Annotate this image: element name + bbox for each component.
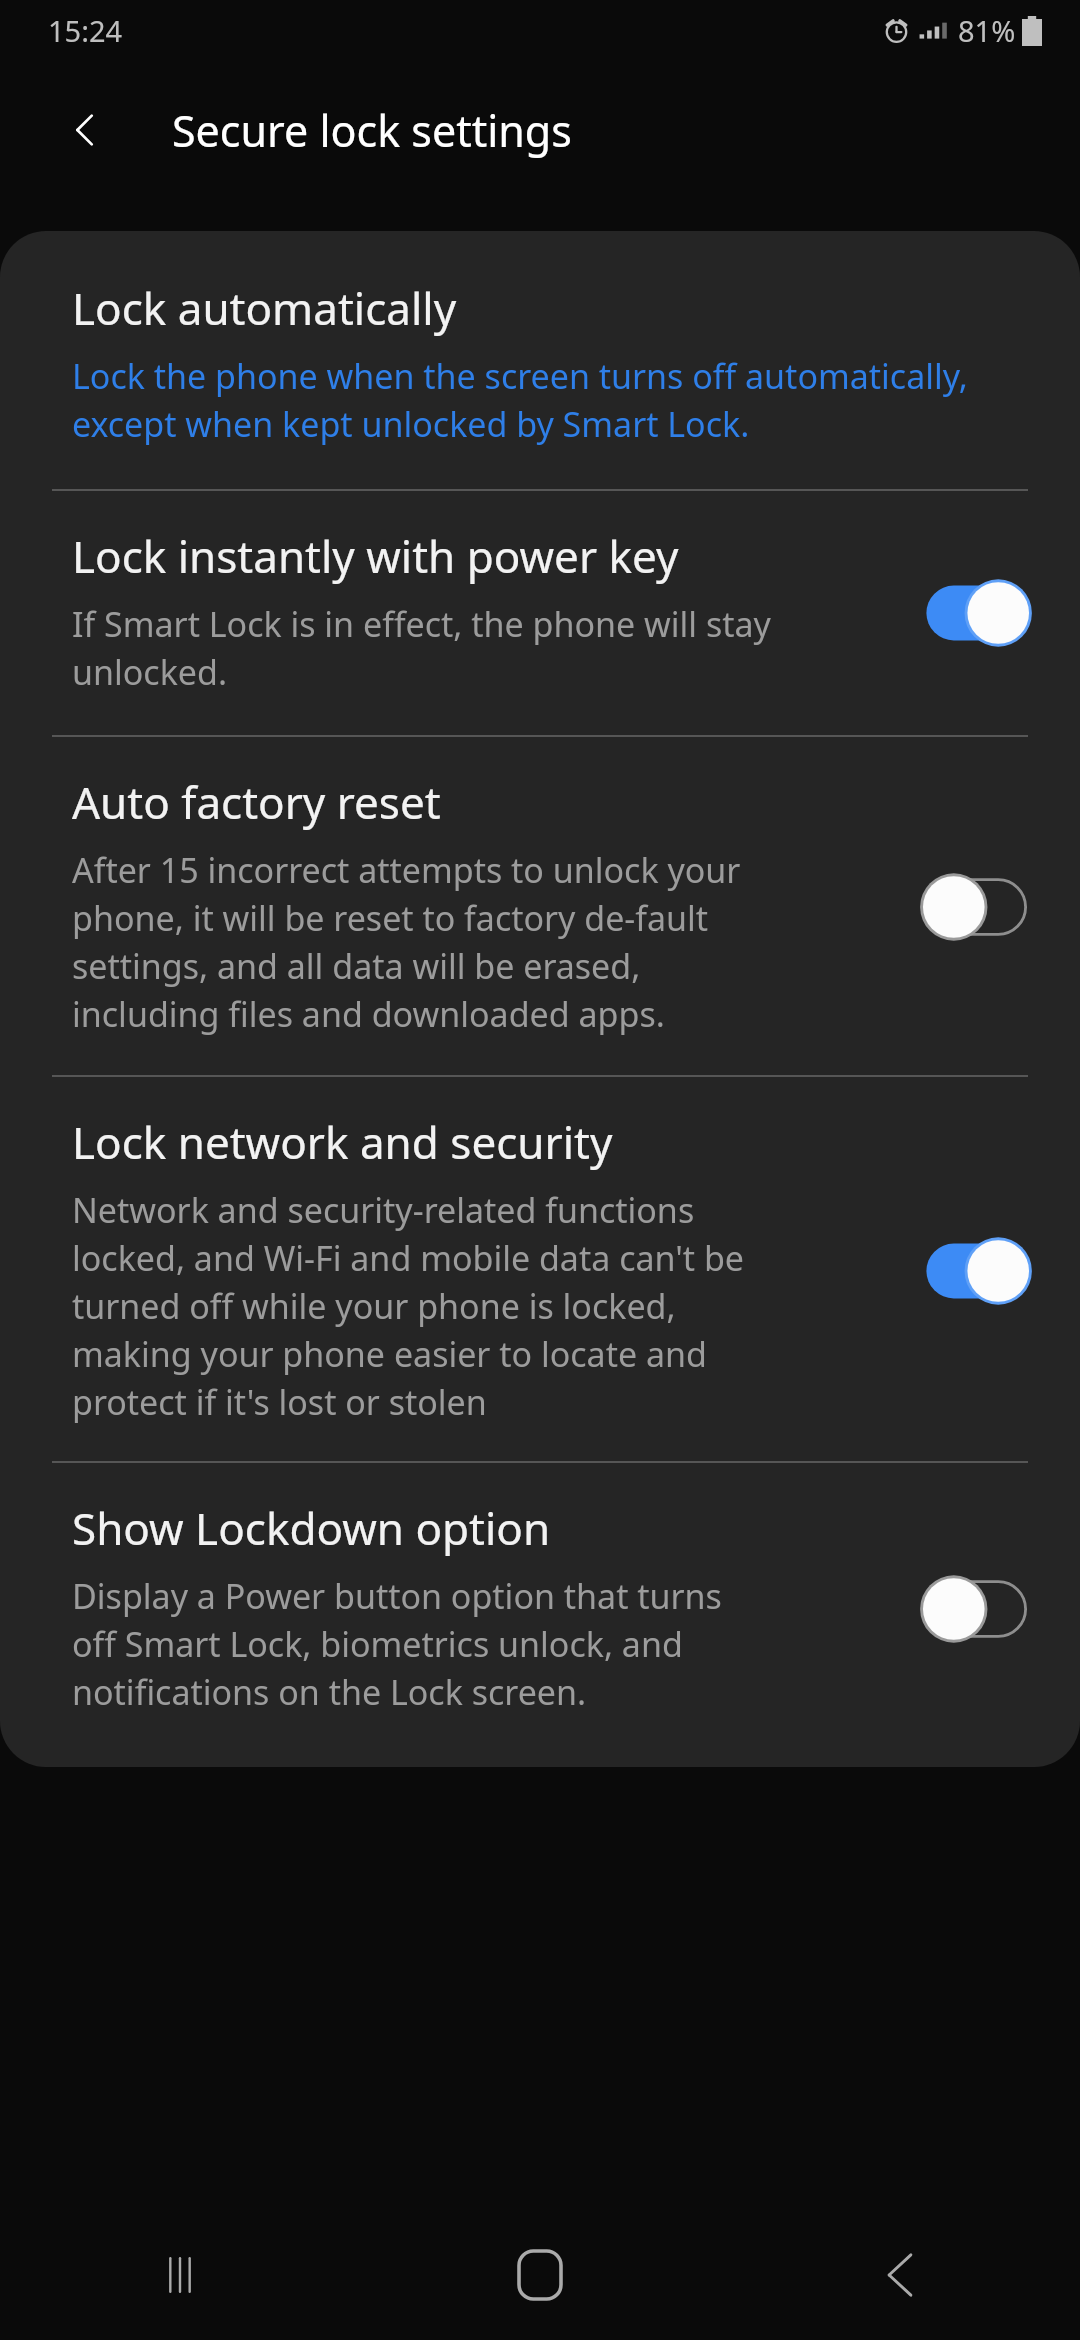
staticText: 15:24 [48, 11, 123, 50]
button[interactable]: Lock instantly with power key [0, 491, 1080, 735]
button[interactable]: Lock automatically [0, 231, 1080, 489]
staticText: 81% [958, 11, 1016, 50]
staticText: Secure lock settings [172, 101, 572, 160]
button[interactable]: Toggle off [914, 1572, 1038, 1646]
button[interactable]: Show Lockdown option [0, 1463, 1080, 1767]
button[interactable]: Toggle on [914, 1234, 1038, 1308]
staticText: Network and security-related functions l… [72, 1185, 772, 1425]
staticText: Lock the phone when the screen turns off… [72, 351, 1038, 447]
button[interactable]: Back [720, 2210, 1080, 2340]
staticText: Auto factory reset [72, 777, 441, 831]
button[interactable]: Back [50, 94, 122, 166]
staticText: After 15 incorrect attempts to unlock yo… [72, 845, 772, 1037]
button[interactable]: Home [360, 2210, 720, 2340]
button[interactable]: Toggle off [914, 870, 1038, 944]
staticText: Display a Power button option that turns… [72, 1571, 772, 1715]
staticText: Lock instantly with power key [72, 531, 679, 585]
staticText: Show Lockdown option [72, 1503, 551, 1557]
staticText: Lock automatically [72, 283, 457, 337]
staticText: If Smart Lock is in effect, the phone wi… [72, 599, 772, 695]
button[interactable]: Toggle on [914, 576, 1038, 650]
button[interactable]: Auto factory reset [0, 737, 1080, 1075]
staticText: Lock network and security [72, 1117, 613, 1171]
button[interactable]: Lock network and security [0, 1077, 1080, 1461]
button[interactable]: Recents [0, 2210, 360, 2340]
